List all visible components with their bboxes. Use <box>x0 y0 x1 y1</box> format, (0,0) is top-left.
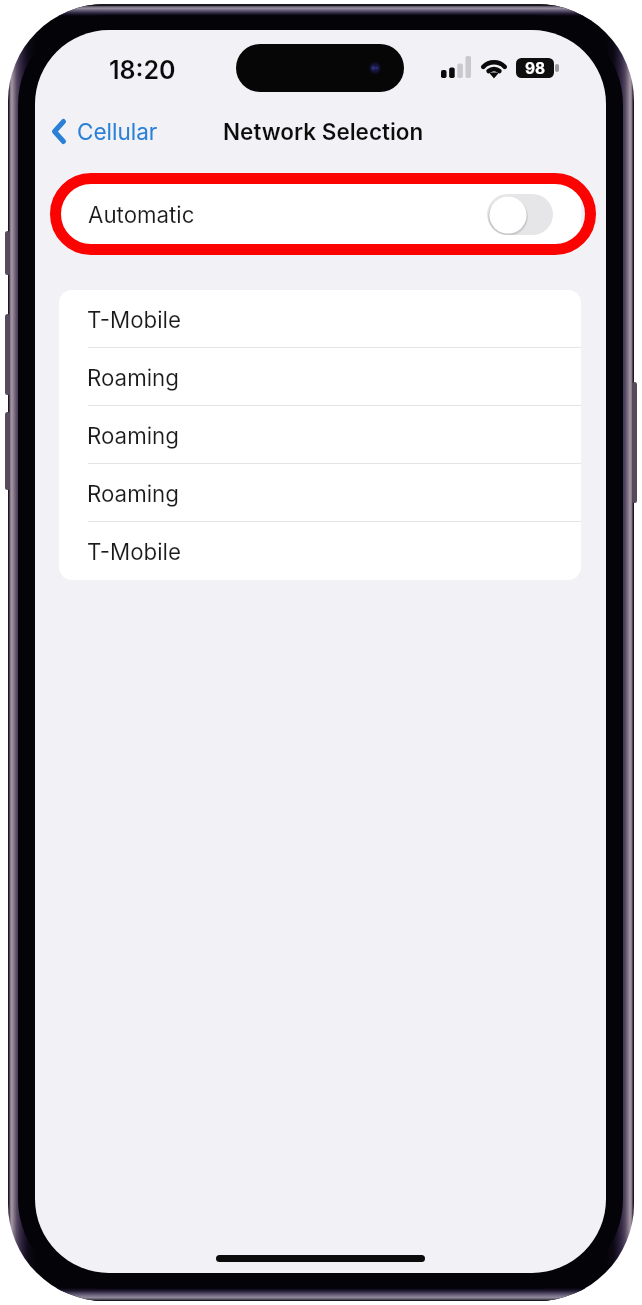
staticText: 18:20 <box>109 55 176 85</box>
button[interactable]: Roaming <box>59 348 581 406</box>
staticText: Automatic <box>88 201 195 228</box>
staticText: Roaming <box>87 364 179 391</box>
staticText: Roaming <box>87 480 179 507</box>
button[interactable]: T-Mobile <box>59 522 581 580</box>
button[interactable]: Roaming <box>59 406 581 464</box>
staticText: Network Selection <box>223 118 424 145</box>
staticText: Roaming <box>87 422 179 449</box>
button[interactable]: Automatic <box>59 183 581 245</box>
staticText: T-Mobile <box>87 306 181 333</box>
button[interactable]: Automatic toggle, off <box>487 194 553 235</box>
staticText: T-Mobile <box>87 538 181 565</box>
button[interactable]: Cellular <box>44 108 168 154</box>
button[interactable]: Roaming <box>59 464 581 522</box>
button[interactable]: T-Mobile <box>59 290 581 348</box>
staticText: Cellular <box>77 118 158 145</box>
staticText: 98 <box>525 59 546 78</box>
